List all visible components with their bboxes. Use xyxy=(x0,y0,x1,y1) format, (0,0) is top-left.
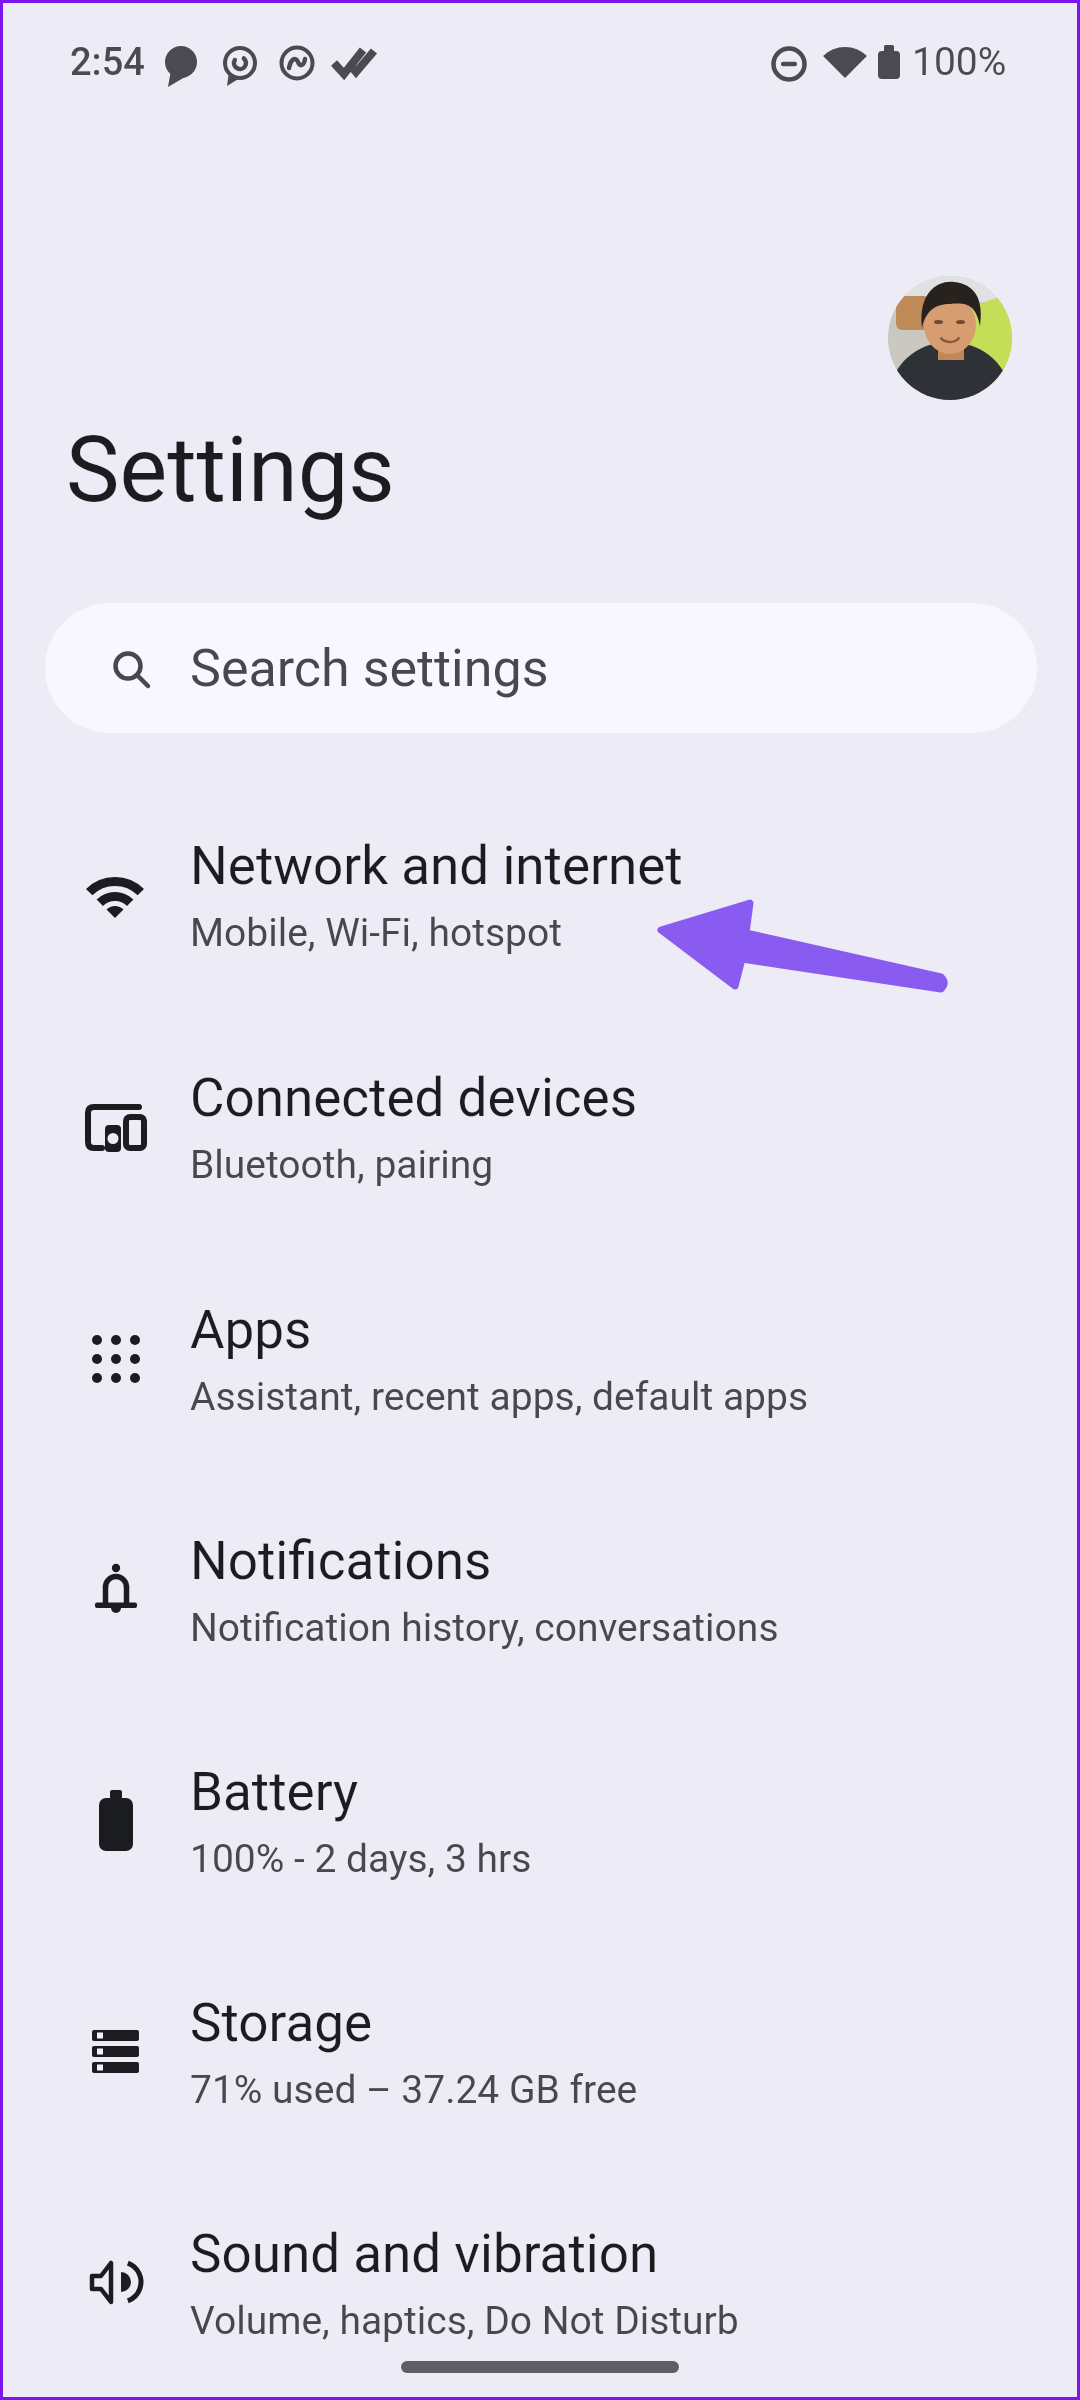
button[interactable]: Sound and vibration xyxy=(0,2174,1080,2364)
staticText: 100% xyxy=(912,39,1007,85)
staticText: Network and internet xyxy=(190,835,683,897)
staticText: 71% used – 37.24 GB free xyxy=(190,2067,638,2113)
staticText: Bluetooth, pairing xyxy=(190,1142,494,1188)
button[interactable]: Apps xyxy=(0,1250,1080,1440)
staticText: Mobile, Wi-Fi, hotspot xyxy=(190,910,562,956)
staticText: 2:54 xyxy=(70,40,145,85)
staticText: Search settings xyxy=(190,638,549,699)
staticText: 100% - 2 days, 3 hrs xyxy=(190,1836,532,1882)
button[interactable]: Search settings xyxy=(45,603,1037,733)
staticText: Assistant, recent apps, default apps xyxy=(190,1374,809,1420)
staticText: Volume, haptics, Do Not Disturb xyxy=(190,2298,739,2344)
staticText: Notifications xyxy=(190,1530,492,1592)
staticText: Storage xyxy=(190,1992,373,2054)
button[interactable]: Battery xyxy=(0,1712,1080,1902)
staticText: Notification history, conversations xyxy=(190,1605,779,1651)
button[interactable] xyxy=(888,276,1012,400)
staticText: Connected devices xyxy=(190,1067,638,1129)
staticText: Sound and vibration xyxy=(190,2223,659,2285)
button[interactable]: Storage xyxy=(0,1943,1080,2133)
staticText: Settings xyxy=(66,418,395,523)
staticText: Apps xyxy=(190,1299,312,1361)
button[interactable]: Network and internet xyxy=(0,786,1080,976)
button[interactable]: Connected devices xyxy=(0,1018,1080,1208)
staticText: Battery xyxy=(190,1761,359,1823)
button[interactable]: Notifications xyxy=(0,1481,1080,1671)
